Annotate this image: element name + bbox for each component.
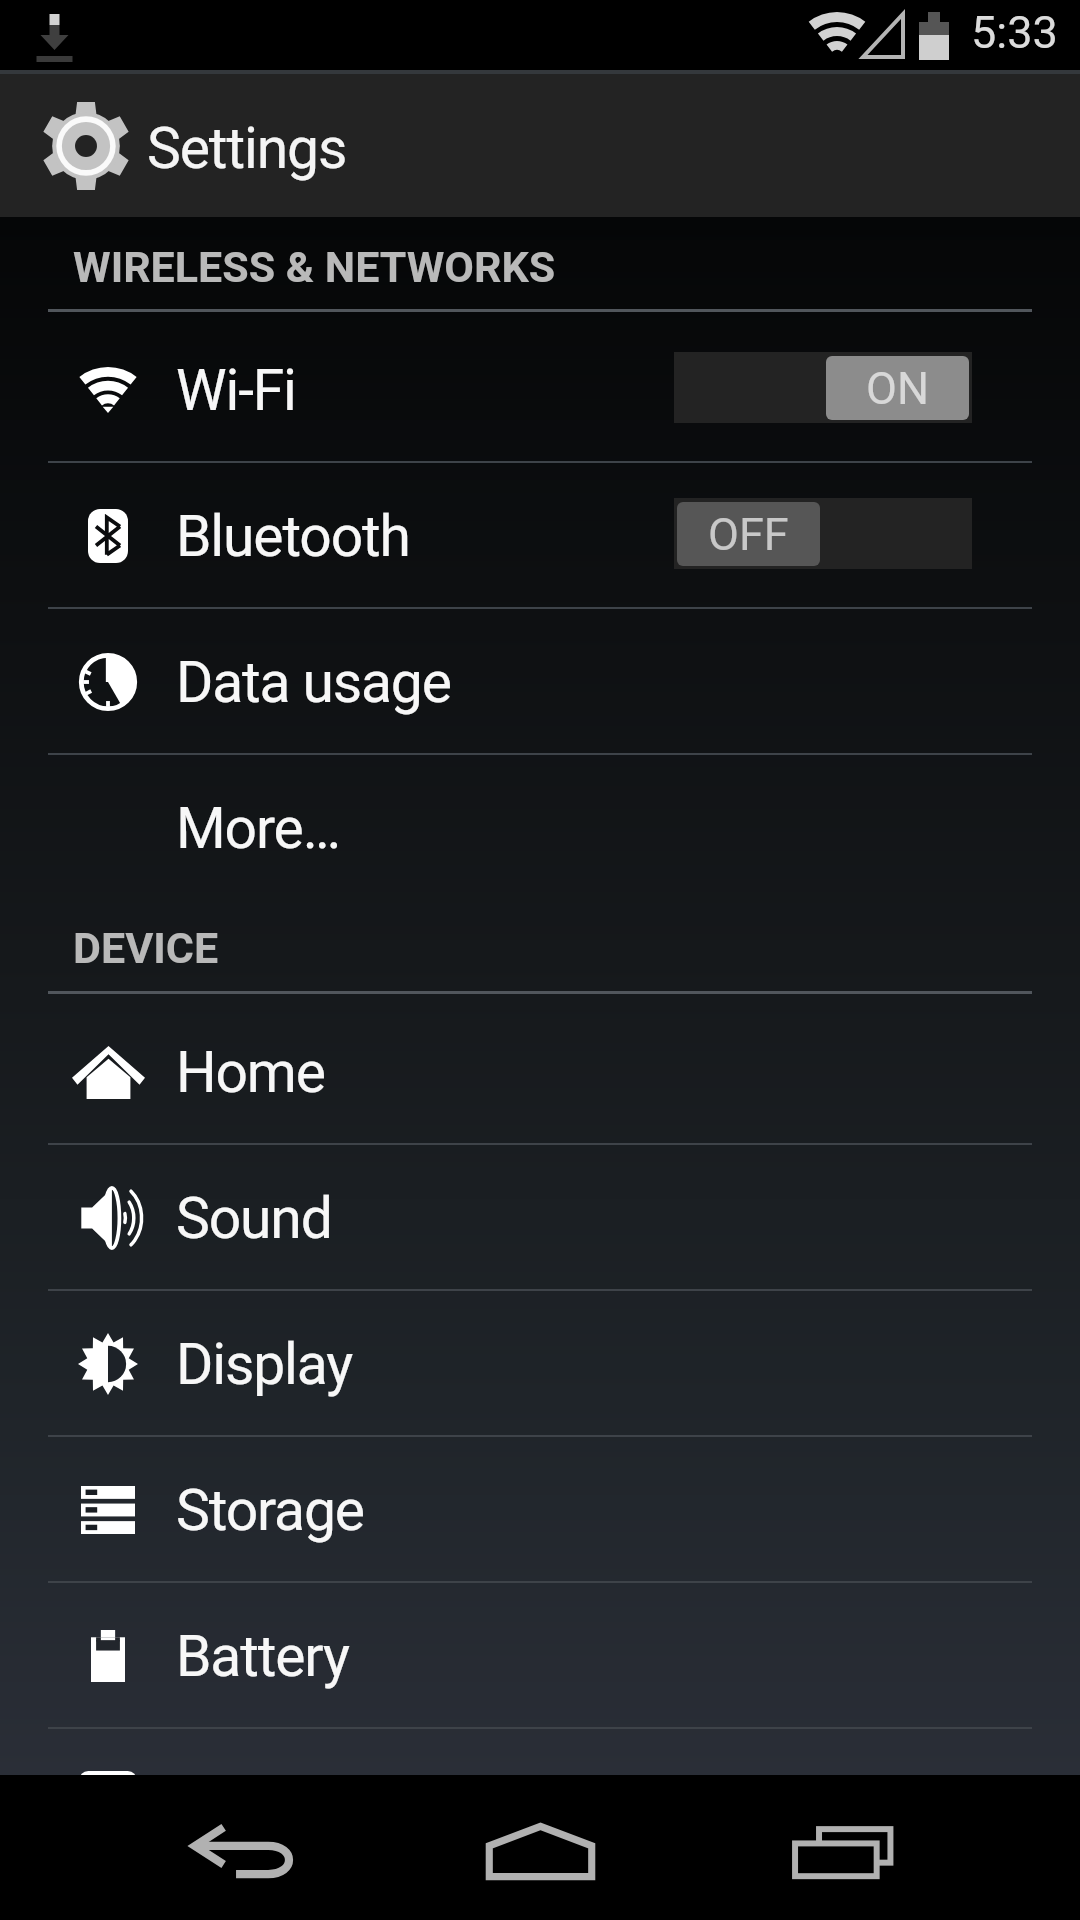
button[interactable]: Battery [0, 1583, 1080, 1729]
staticText: Sound [176, 1185, 332, 1252]
staticText: Home [176, 1039, 325, 1106]
button[interactable]: Apps [0, 1729, 1080, 1875]
staticText: Apps [176, 1769, 303, 1836]
staticText: Settings [147, 115, 347, 182]
button[interactable]: Back [115, 1775, 365, 1920]
staticText: WIRELESS & NETWORKS [73, 242, 556, 292]
button[interactable]: Wi-Fi [0, 317, 1080, 463]
button[interactable]: More… [0, 755, 1080, 901]
button[interactable]: Storage [0, 1437, 1080, 1583]
button[interactable]: Bluetooth [0, 463, 1080, 609]
staticText: Battery [176, 1623, 349, 1690]
button[interactable]: Settings [0, 74, 1080, 217]
button[interactable]: OFF [674, 498, 972, 569]
button[interactable]: ON [674, 352, 972, 423]
staticText: Wi-Fi [176, 357, 296, 424]
staticText: Bluetooth [176, 503, 410, 570]
staticText: DEVICE [73, 923, 219, 973]
staticText: More… [176, 795, 340, 862]
button[interactable]: Sound [0, 1145, 1080, 1291]
staticText: Data usage [176, 649, 451, 716]
staticText: Display [176, 1331, 353, 1398]
button[interactable]: Recent apps [718, 1775, 968, 1920]
button[interactable]: Home [0, 999, 1080, 1145]
button[interactable]: Display [0, 1291, 1080, 1437]
staticText: Storage [176, 1477, 364, 1544]
staticText: ON [866, 362, 930, 415]
button[interactable]: Home [400, 1775, 680, 1920]
staticText: OFF [708, 508, 789, 561]
staticText: 5:33 [971, 6, 1058, 59]
button[interactable]: Data usage [0, 609, 1080, 755]
